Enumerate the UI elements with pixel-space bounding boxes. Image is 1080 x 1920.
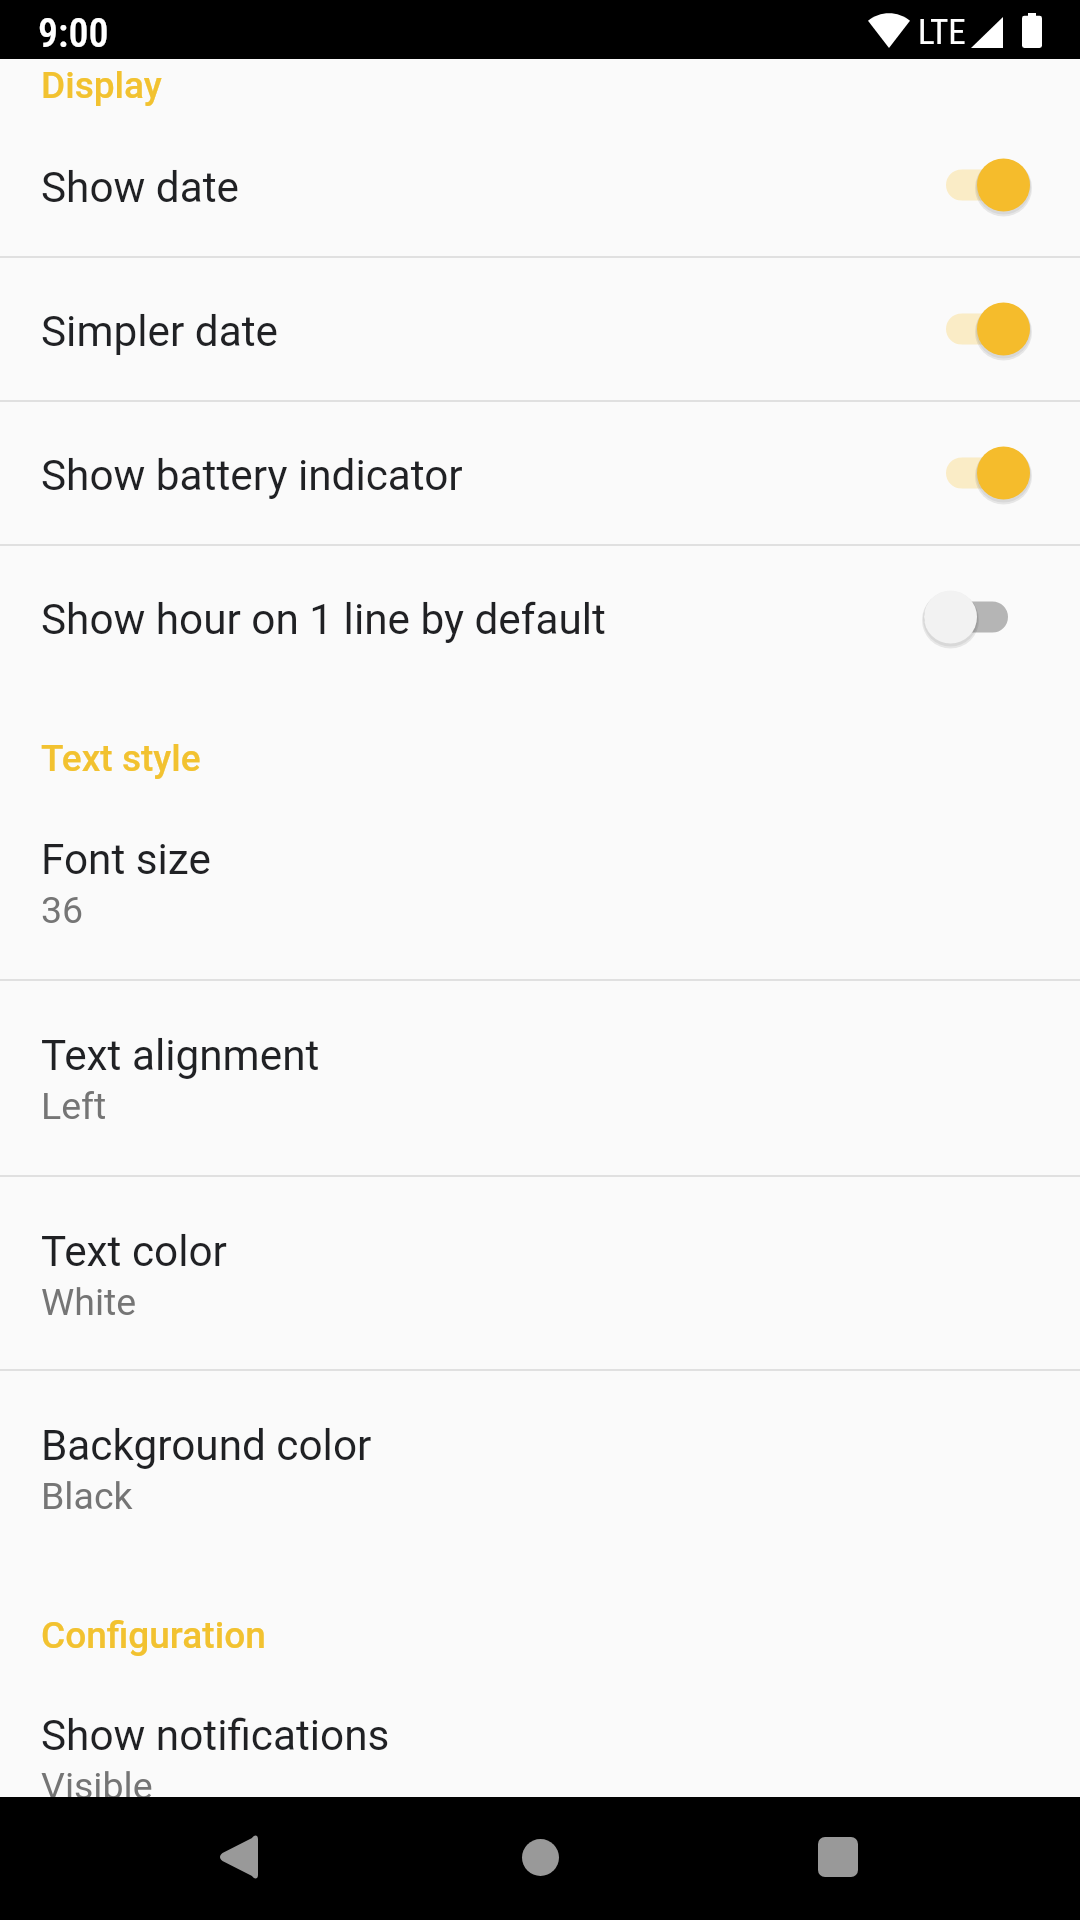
button[interactable]: Show date (0, 114, 1080, 256)
staticText: Show battery indicator (41, 451, 946, 501)
staticText: Show hour on 1 line by default (41, 595, 924, 645)
staticText: Show notifications (41, 1711, 390, 1761)
staticText: Font size (41, 835, 211, 885)
staticText: Black (41, 1474, 133, 1518)
staticText: Left (41, 1084, 107, 1128)
button[interactable]: Toggle, off (924, 587, 1008, 647)
staticText: Text alignment (41, 1031, 320, 1081)
button[interactable]: Show notifications (0, 1661, 1080, 1797)
staticText: 36 (41, 888, 84, 932)
staticText: Visible (41, 1764, 153, 1797)
staticText: Background color (41, 1421, 372, 1471)
button[interactable]: Text color (0, 1177, 1080, 1369)
staticText: LTE (918, 12, 966, 53)
button[interactable]: Font size (0, 785, 1080, 979)
staticText: Simpler date (41, 307, 946, 357)
button[interactable]: Show battery indicator (0, 402, 1080, 544)
button[interactable]: Text alignment (0, 981, 1080, 1175)
button[interactable]: Background color (0, 1371, 1080, 1565)
staticText: Configuration (41, 1614, 266, 1657)
staticText: Text style (41, 737, 201, 780)
staticText: Show date (41, 163, 946, 213)
button[interactable]: Toggle, on (946, 443, 1030, 503)
staticText: Text color (41, 1227, 227, 1277)
button[interactable]: Home (491, 1808, 589, 1906)
button[interactable]: Simpler date (0, 258, 1080, 400)
staticText: White (41, 1280, 137, 1324)
button[interactable]: Toggle, on (946, 299, 1030, 359)
staticText: Display (41, 64, 162, 107)
button[interactable]: Recents (789, 1808, 887, 1906)
button[interactable]: Toggle, on (946, 155, 1030, 215)
button[interactable]: Back (190, 1808, 288, 1906)
staticText: 9:00 (38, 10, 109, 57)
button[interactable]: Show hour on 1 line by default (0, 546, 1080, 688)
